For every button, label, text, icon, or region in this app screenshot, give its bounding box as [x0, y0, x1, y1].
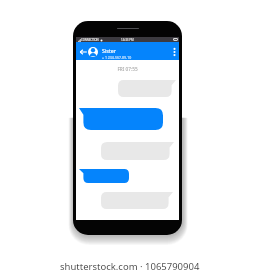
- staticText: 14:33 PM: [121, 38, 134, 42]
- staticText: + 1 234-567-89-10: [102, 55, 132, 60]
- button[interactable]: [118, 80, 176, 97]
- staticText: FRI 07:55: [76, 66, 179, 72]
- staticText: shutterstock.com · 1065790904: [60, 260, 200, 273]
- button[interactable]: Back: [79, 47, 88, 57]
- button[interactable]: [101, 192, 173, 209]
- button[interactable]: [79, 169, 129, 183]
- button[interactable]: More options: [171, 45, 178, 59]
- staticText: Sister: [102, 47, 116, 54]
- staticText: CONNECTION: [81, 38, 99, 42]
- button[interactable]: [79, 108, 163, 130]
- button[interactable]: [101, 142, 174, 160]
